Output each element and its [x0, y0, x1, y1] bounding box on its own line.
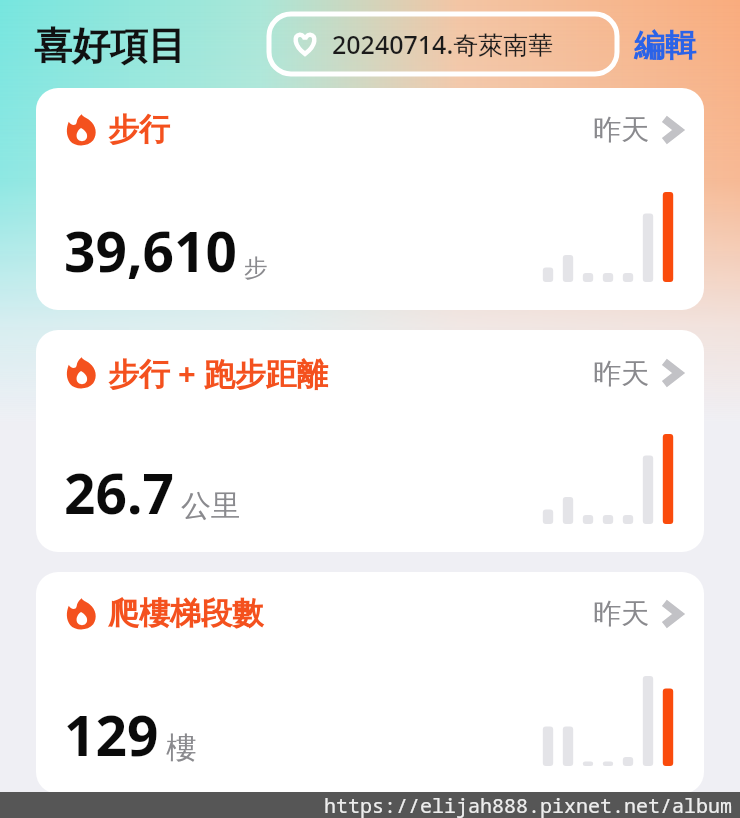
staticText: 昨天 — [593, 356, 649, 391]
button[interactable]: 步行 + 跑步距離 — [36, 330, 704, 552]
staticText: 步 — [244, 253, 268, 283]
staticText: https://elijah888.pixnet.net/album — [324, 792, 732, 818]
other: Open details — [663, 115, 680, 145]
staticText: 步行 — [108, 110, 170, 149]
other: Open details — [663, 599, 680, 629]
staticText: 129 — [64, 697, 159, 772]
button[interactable]: 爬樓梯段數 — [36, 572, 704, 794]
button[interactable]: 編輯 — [632, 24, 698, 67]
staticText: 編輯 — [634, 26, 696, 65]
staticText: 爬樓梯段數 — [108, 594, 263, 633]
staticText: 喜好項目 — [34, 22, 186, 70]
staticText: 步行 + 跑步距離 — [108, 352, 328, 394]
other: Open details — [663, 358, 680, 388]
staticText: 公里 — [181, 487, 241, 525]
staticText: 26.7 — [64, 455, 174, 530]
staticText: 樓 — [166, 729, 196, 767]
staticText: 39,610 — [64, 213, 237, 288]
staticText: 昨天 — [593, 112, 649, 147]
staticText: 20240714.奇萊南華 — [332, 27, 554, 61]
button[interactable]: 步行 — [36, 88, 704, 310]
staticText: 昨天 — [593, 596, 649, 631]
